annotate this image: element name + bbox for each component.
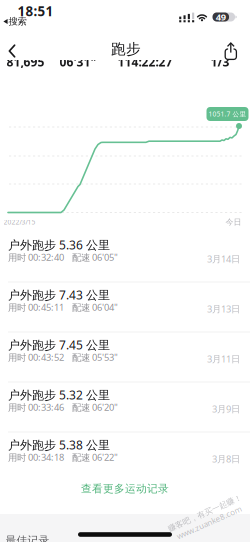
staticText: 户外跑步 7.43 公里 xyxy=(8,287,110,303)
staticText: 用时 00:45:11 配速 06'04" xyxy=(8,301,118,313)
staticText: 最佳记录 xyxy=(5,534,49,542)
staticText: 户外跑步 5.38 公里 xyxy=(8,437,110,453)
staticText: 搜索 xyxy=(8,16,26,27)
staticText: 3月9日 xyxy=(212,403,240,415)
button[interactable]: 户外跑步 5.38 公里 xyxy=(0,432,250,482)
staticText: 18:51 xyxy=(17,2,53,20)
staticText: 户外跑步 7.45 公里 xyxy=(8,337,110,353)
staticText: 3月14日 xyxy=(207,253,240,265)
staticText: 用时 00:33:46 配速 06'20" xyxy=(8,401,118,413)
staticText: 3月8日 xyxy=(212,453,240,465)
button[interactable]: 户外跑步 5.32 公里 xyxy=(0,382,250,432)
staticText: 户外跑步 5.36 公里 xyxy=(8,237,110,253)
staticText: 1051.7 公里 xyxy=(208,110,246,118)
staticText: 3月13日 xyxy=(207,303,240,315)
staticText: 赚客吧，有买一起赚！ xyxy=(167,508,247,518)
staticText: 用时 00:34:18 配速 06'22" xyxy=(8,451,118,463)
button[interactable]: 户外跑步 5.36 公里 xyxy=(0,232,250,282)
button[interactable]: 分享 xyxy=(219,38,243,62)
staticText: 查看更多运动记录 xyxy=(81,482,169,495)
staticText: www.zuanke8.com xyxy=(172,518,242,528)
staticText: 2022/3/15 xyxy=(3,218,35,226)
staticText: 用时 00:43:52 配速 05'53" xyxy=(8,351,118,363)
staticText: 户外跑步 5.32 公里 xyxy=(8,387,110,403)
staticText: 49 xyxy=(216,11,226,23)
button[interactable]: 户外跑步 7.43 公里 xyxy=(0,282,250,332)
staticText: 1/3 xyxy=(210,54,229,70)
staticText: 06'31" xyxy=(59,54,96,70)
button[interactable]: 查看更多运动记录 xyxy=(0,478,250,500)
button[interactable]: 返回 xyxy=(1,40,23,62)
staticText: 今日 xyxy=(225,217,241,227)
staticText: 用时 00:32:40 配速 06'05" xyxy=(8,251,118,263)
staticText: 3月11日 xyxy=(207,353,240,365)
button[interactable]: 户外跑步 7.45 公里 xyxy=(0,332,250,382)
staticText: 跑步 xyxy=(111,40,141,58)
staticText: 81,695 xyxy=(6,54,44,70)
staticText: 114:22:27 xyxy=(117,54,172,70)
